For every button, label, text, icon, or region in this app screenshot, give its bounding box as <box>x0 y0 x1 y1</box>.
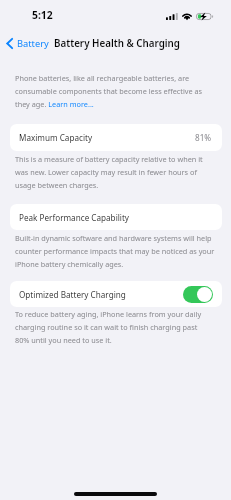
staticText: To reduce battery aging, iPhone learns f… <box>15 309 212 345</box>
button[interactable]: Optimized Battery Charging toggle <box>183 286 213 303</box>
staticText: Built-in dynamic software and hardware s… <box>15 233 217 269</box>
staticText: 81% <box>195 132 212 143</box>
staticText: Peak Performance Capability <box>19 212 130 223</box>
staticText: This is a measure of battery capacity re… <box>15 154 217 190</box>
button[interactable]: Maximum Capacity <box>10 124 222 151</box>
button[interactable]: Peak Performance Capability <box>10 204 222 230</box>
button[interactable]: Optimized Battery Charging <box>10 281 222 307</box>
staticText: Battery <box>17 37 49 50</box>
staticText: Phone batteries, like all rechargeable b… <box>15 73 217 109</box>
staticText: 5:12 <box>32 8 53 22</box>
button[interactable]: Battery <box>6 32 49 54</box>
staticText: Maximum Capacity <box>19 132 93 143</box>
staticText: Optimized Battery Charging <box>19 289 126 300</box>
staticText: Battery Health & Charging <box>54 37 180 50</box>
